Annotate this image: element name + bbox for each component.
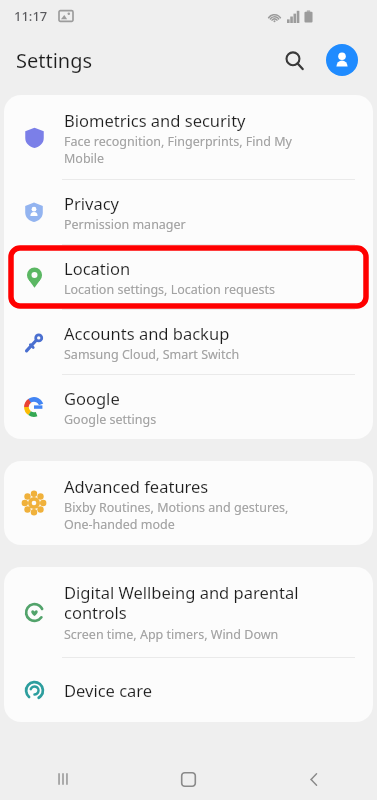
- staticText: 11:17: [14, 7, 48, 25]
- staticText: Accounts and backup: [64, 322, 230, 344]
- button[interactable]: Digital Wellbeing and parental controls: [4, 567, 373, 657]
- staticText: Settings: [16, 47, 93, 74]
- button[interactable]: Back: [251, 758, 377, 800]
- staticText: Bixby Routines, Motions and gestures, On…: [64, 499, 289, 532]
- button[interactable]: Home: [125, 758, 251, 800]
- button[interactable]: Device care: [4, 658, 373, 722]
- staticText: Permission manager: [64, 216, 186, 233]
- staticText: Device care: [64, 679, 153, 701]
- button[interactable]: Recents: [0, 758, 125, 800]
- staticText: Samsung Cloud, Smart Switch: [64, 346, 240, 363]
- staticText: Location settings, Location requests: [64, 281, 276, 298]
- button[interactable]: Location: [4, 245, 373, 309]
- staticText: Location: [64, 257, 131, 279]
- staticText: Advanced features: [64, 475, 209, 497]
- button[interactable]: Accounts and backup: [4, 310, 373, 374]
- button[interactable]: Advanced features: [4, 461, 373, 545]
- staticText: Screen time, App timers, Wind Down: [64, 626, 279, 643]
- staticText: Biometrics and security: [64, 109, 246, 131]
- staticText: Digital Wellbeing and parental controls: [64, 581, 299, 624]
- staticText: Google: [64, 387, 120, 409]
- button[interactable]: Google: [4, 375, 373, 439]
- staticText: Face recognition, Fingerprints, Find My …: [64, 133, 292, 166]
- button[interactable]: Account: [326, 44, 358, 76]
- button[interactable]: Privacy: [4, 180, 373, 244]
- button[interactable]: Search: [273, 39, 315, 81]
- staticText: Google settings: [64, 411, 157, 428]
- button[interactable]: Biometrics and security: [4, 95, 373, 179]
- staticText: Privacy: [64, 192, 120, 214]
